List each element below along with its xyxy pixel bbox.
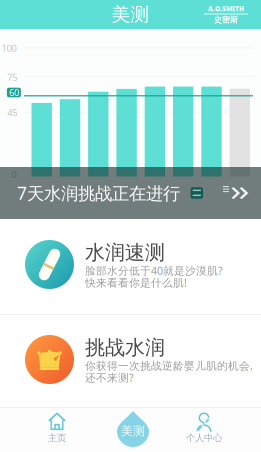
staticText: 个人中心: [186, 432, 222, 444]
staticText: 史密斯: [214, 15, 238, 25]
staticText: 水润速测: [85, 240, 165, 265]
staticText: 快来看看你是什么肌!: [85, 275, 187, 290]
staticText: 0: [11, 168, 16, 181]
button[interactable]: 挑战水润: [0, 314, 261, 407]
staticText: 7天水润挑战正在进行: [17, 181, 180, 204]
staticText: 美测: [111, 3, 149, 26]
staticText: 75: [7, 71, 17, 83]
staticText: 60: [9, 86, 19, 99]
staticText: 你获得一次挑战逆龄婴儿肌的机会,: [85, 358, 253, 373]
button[interactable]: 主页: [32, 413, 82, 443]
staticText: 挑战水润: [85, 335, 165, 360]
button[interactable]: 水润速测: [0, 219, 261, 314]
staticText: 还不来测?: [85, 370, 134, 385]
staticText: 主页: [48, 432, 66, 444]
button[interactable]: A.O. Smith: [200, 6, 261, 23]
button[interactable]: 美测: [113, 410, 153, 448]
staticText: A.O.SMITH: [208, 4, 244, 13]
staticText: 45: [7, 106, 17, 119]
staticText: 100: [1, 42, 16, 54]
staticText: 脸部水分低于40就是沙漠肌?: [85, 263, 223, 278]
button[interactable]: 7天水润挑战正在进行: [0, 167, 261, 219]
staticText: 美测: [121, 424, 145, 438]
button[interactable]: 个人中心: [179, 413, 229, 443]
